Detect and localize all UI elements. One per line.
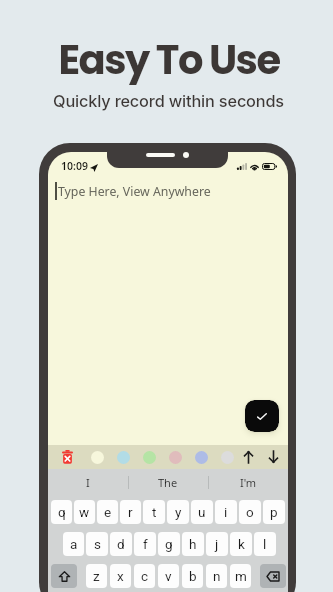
staticText: f — [143, 536, 148, 552]
button[interactable]: Shift — [51, 564, 77, 588]
staticText: i — [224, 504, 228, 520]
button[interactable]: w — [74, 500, 95, 524]
staticText: w — [79, 504, 90, 520]
staticText: I'm — [240, 475, 257, 490]
button[interactable]: u — [191, 500, 213, 524]
button[interactable]: y — [167, 500, 189, 524]
staticText: p — [270, 504, 278, 520]
button[interactable]: n — [206, 564, 227, 588]
staticText: l — [263, 536, 267, 552]
staticText: z — [93, 568, 100, 584]
button[interactable]: d — [110, 532, 132, 556]
button[interactable]: Move up — [243, 451, 254, 463]
staticText: c — [141, 568, 149, 584]
button[interactable]: Periwinkle — [195, 451, 208, 464]
button[interactable]: The — [128, 469, 208, 495]
button[interactable]: e — [97, 500, 118, 524]
staticText: I — [86, 475, 90, 490]
staticText: 10:09 — [61, 159, 88, 173]
staticText: u — [198, 504, 206, 520]
staticText: s — [94, 536, 101, 552]
staticText: e — [104, 504, 112, 520]
staticText: j — [215, 536, 219, 552]
button[interactable]: Move down — [268, 451, 279, 463]
staticText: o — [246, 504, 254, 520]
button[interactable]: t — [143, 500, 165, 524]
button[interactable]: v — [158, 564, 179, 588]
button[interactable]: q — [51, 500, 72, 524]
staticText: h — [189, 536, 197, 552]
staticText: Quickly record within seconds — [53, 91, 284, 111]
staticText: g — [165, 536, 173, 552]
button[interactable]: b — [182, 564, 203, 588]
button[interactable]: r — [120, 500, 141, 524]
staticText: y — [175, 504, 182, 520]
button[interactable]: m — [230, 564, 251, 588]
button[interactable]: I'm — [208, 469, 288, 495]
staticText: r — [128, 504, 133, 520]
button[interactable]: j — [206, 532, 228, 556]
button[interactable]: Pink — [169, 451, 182, 464]
staticText: d — [117, 536, 125, 552]
staticText: Type Here, View Anywhere — [58, 183, 211, 200]
staticText: v — [165, 568, 172, 584]
button[interactable]: Green — [143, 451, 156, 464]
button[interactable]: p — [263, 500, 285, 524]
staticText: Easy To Use — [58, 32, 280, 88]
staticText: q — [58, 504, 66, 520]
button[interactable]: i — [215, 500, 237, 524]
button[interactable]: Blue — [117, 451, 130, 464]
button[interactable]: c — [134, 564, 155, 588]
button[interactable]: Cream — [91, 451, 104, 464]
button[interactable]: Delete note — [62, 450, 73, 464]
button[interactable]: f — [134, 532, 156, 556]
button[interactable]: x — [110, 564, 131, 588]
button[interactable]: o — [239, 500, 261, 524]
staticText: x — [117, 568, 124, 584]
button[interactable]: g — [158, 532, 180, 556]
button[interactable]: Gray — [221, 451, 234, 464]
staticText: m — [235, 568, 247, 584]
button[interactable]: I — [48, 469, 128, 495]
button[interactable]: s — [86, 532, 108, 556]
button[interactable]: Save note — [245, 400, 279, 432]
button[interactable]: Backspace — [260, 564, 286, 588]
button[interactable]: l — [254, 532, 276, 556]
staticText: The — [158, 475, 178, 490]
button[interactable]: z — [86, 564, 107, 588]
staticText: b — [189, 568, 197, 584]
button[interactable]: k — [230, 532, 252, 556]
button[interactable]: a — [63, 532, 84, 556]
staticText: a — [70, 536, 78, 552]
staticText: n — [213, 568, 221, 584]
staticText: k — [238, 536, 245, 552]
staticText: t — [152, 504, 157, 520]
button[interactable]: h — [182, 532, 204, 556]
